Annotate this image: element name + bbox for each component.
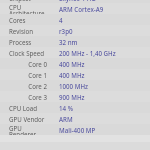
staticText: 900 MHz	[59, 93, 85, 101]
button[interactable]: Cores	[0, 14, 150, 25]
button[interactable]: Core 1	[0, 69, 150, 80]
staticText: Core 3	[9, 93, 47, 101]
button[interactable]: Core 2	[0, 80, 150, 91]
staticText: ARM Cortex-A9	[59, 5, 104, 13]
button[interactable]: CPU Load	[0, 102, 150, 113]
staticText: 1000 MHz	[59, 82, 89, 90]
staticText: 400 MHz	[59, 60, 85, 68]
button[interactable]: Core 3	[0, 91, 150, 102]
staticText: GPU Renderer	[9, 124, 48, 135]
staticText: 32 nm	[59, 38, 78, 46]
button[interactable]: CPU Architecture	[0, 3, 150, 14]
button[interactable]: Process	[0, 36, 150, 47]
staticText: Exynos 4412	[59, 0, 96, 2]
staticText: Cores	[9, 16, 26, 24]
button[interactable]: GPU Vendor	[0, 113, 150, 124]
staticText: Process	[9, 38, 32, 46]
staticText: r3p0	[59, 27, 73, 35]
staticText: Clock Speed	[9, 49, 45, 57]
staticText: Mali-400 MP	[59, 126, 96, 134]
staticText: 400 MHz	[59, 71, 85, 79]
staticText: Core 0	[9, 60, 47, 68]
button[interactable]: Core 0	[0, 58, 150, 69]
staticText: Revision	[9, 27, 34, 35]
staticText: Core 2	[9, 82, 47, 90]
button[interactable]: Chipset	[0, 0, 150, 3]
staticText: 200 MHz - 1,40 GHz	[59, 49, 116, 57]
button[interactable]: GPU Renderer	[0, 124, 150, 135]
staticText: ARM	[59, 115, 73, 123]
button[interactable]: Revision	[0, 25, 150, 36]
staticText: 4	[59, 16, 63, 24]
staticText: Core 1	[9, 71, 47, 79]
staticText: 14 %	[59, 104, 73, 112]
staticText: Chipset	[9, 0, 31, 2]
staticText: CPU Architecture	[9, 3, 48, 14]
staticText: GPU Vendor	[9, 115, 45, 123]
button[interactable]: Clock Speed	[0, 47, 150, 58]
staticText: CPU Load	[9, 104, 38, 112]
